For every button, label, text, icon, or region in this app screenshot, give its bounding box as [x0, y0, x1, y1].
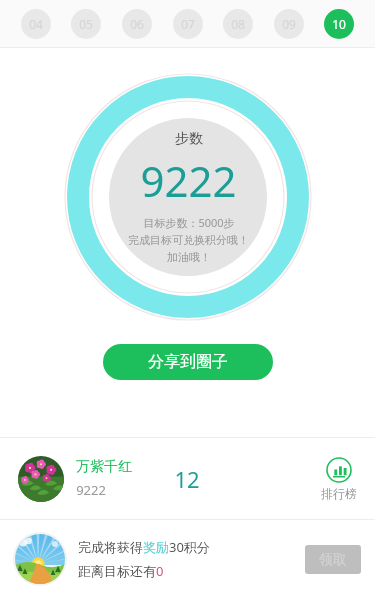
button[interactable]: 排行榜 [317, 453, 361, 505]
button[interactable]: 08 [223, 9, 253, 39]
staticText: 领取 [319, 551, 347, 569]
staticText: 12 [174, 464, 200, 494]
button[interactable]: 05 [71, 9, 101, 39]
button[interactable]: 10 [324, 9, 354, 39]
staticText: 排行榜 [321, 486, 357, 501]
staticText: 分享到圈子 [148, 352, 228, 372]
button[interactable]: 领取 [305, 545, 361, 574]
staticText: 万紫千红 [76, 458, 132, 476]
staticText: 08 [231, 16, 245, 32]
button[interactable]: 07 [173, 9, 203, 39]
staticText: 9222 [140, 152, 237, 209]
button[interactable]: 04 [21, 9, 51, 39]
staticText: 加油哦！ [167, 250, 211, 264]
staticText: 10 [332, 16, 346, 32]
button[interactable]: 09 [274, 9, 304, 39]
staticText: 完成将获得奖励30积分 [78, 538, 210, 556]
button[interactable]: 06 [122, 9, 152, 39]
staticText: 09 [282, 16, 296, 32]
staticText: 目标步数：5000步 [143, 215, 235, 230]
button[interactable]: 万紫千红 [0, 438, 375, 519]
staticText: 完成目标可兑换积分哦！ [128, 233, 249, 247]
staticText: 距离目标还有0 [78, 562, 164, 580]
staticText: 06 [130, 16, 144, 32]
staticText: 07 [181, 16, 195, 32]
staticText: 9222 [76, 481, 106, 499]
staticText: 04 [29, 16, 43, 32]
staticText: 步数 [175, 130, 203, 148]
staticText: 05 [79, 16, 93, 32]
button[interactable]: 分享到圈子 [103, 344, 273, 380]
